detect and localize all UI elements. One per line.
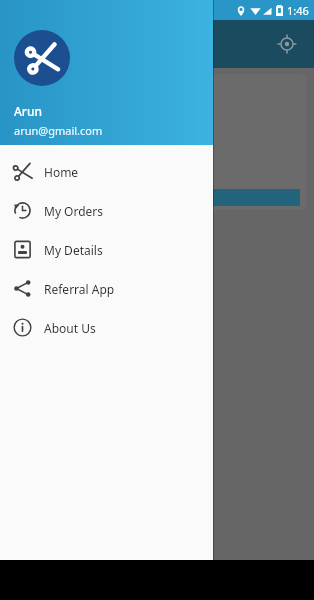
button[interactable]: Referral App	[0, 269, 213, 308]
staticText: Arun	[14, 103, 42, 119]
button[interactable]: My location	[270, 27, 304, 61]
button[interactable]: Arun	[0, 0, 213, 145]
staticText: Home	[44, 164, 79, 180]
staticText: Referral App	[44, 281, 115, 297]
staticText: About Us	[44, 320, 96, 336]
button[interactable]: No 15-6/D, Denai Alam	[8, 74, 306, 210]
staticText: Denai Alam,	[20, 119, 83, 134]
button[interactable]: to	[14, 189, 300, 206]
staticText: My Orders	[44, 203, 104, 219]
staticText: My Details	[44, 242, 103, 258]
staticText: arun@gmail.com	[14, 123, 103, 138]
button[interactable]: My Details	[0, 230, 213, 269]
button[interactable]: About Us	[0, 308, 213, 347]
button[interactable]: My Orders	[0, 191, 213, 230]
button[interactable]: Home	[0, 152, 213, 191]
staticText: No 15-6/D, Denai Alam	[20, 92, 138, 107]
staticText: to	[20, 191, 30, 205]
staticText: 1:46	[287, 3, 309, 18]
